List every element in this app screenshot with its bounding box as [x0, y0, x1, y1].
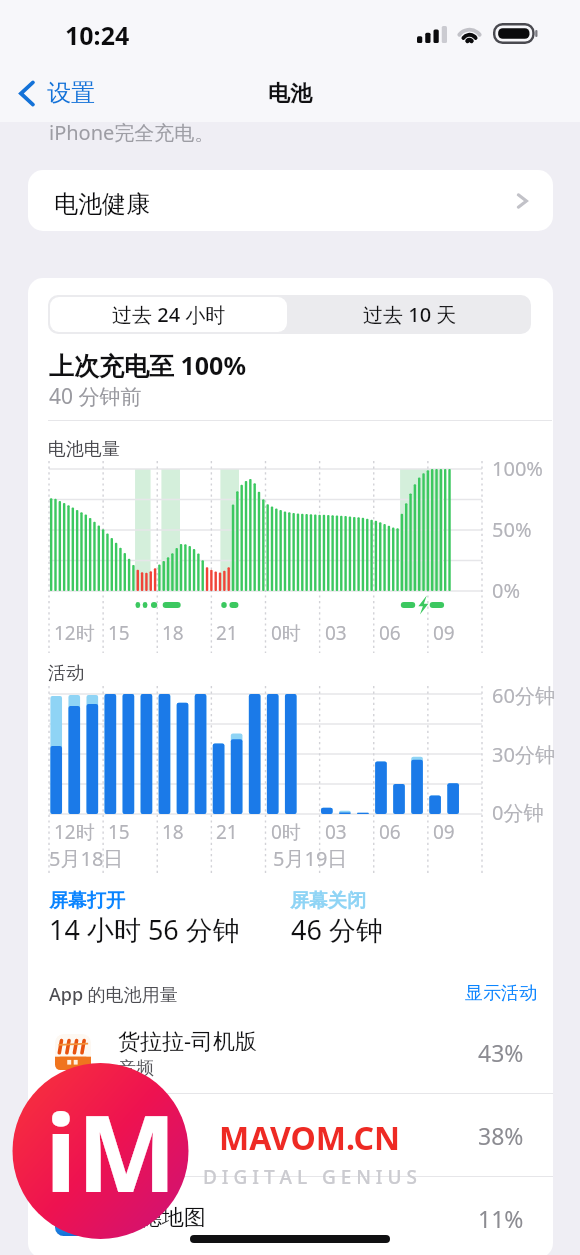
- staticText: 30分钟: [492, 741, 555, 768]
- staticText: 38%: [478, 1120, 524, 1151]
- staticText: 电池健康: [54, 189, 150, 219]
- staticText: 0%: [492, 577, 521, 604]
- staticText: 03: [325, 620, 347, 646]
- staticText: 显示活动: [465, 982, 537, 1005]
- staticText: 10:24: [65, 18, 130, 52]
- staticText: 过去 24 小时: [112, 301, 226, 328]
- staticText: 15: [108, 819, 130, 845]
- button[interactable]: 货拉拉-司机版: [28, 1011, 553, 1093]
- staticText: 15: [108, 620, 130, 646]
- staticText: 03: [325, 819, 347, 845]
- staticText: 14 小时 56 分钟: [49, 911, 240, 948]
- staticText: 18: [162, 819, 184, 845]
- staticText: 06: [379, 620, 401, 646]
- staticText: 上次充电至 100%: [49, 348, 246, 382]
- staticText: 5月19日: [273, 845, 348, 872]
- staticText: 0时: [271, 620, 301, 646]
- staticText: 过去 10 天: [363, 301, 457, 328]
- button[interactable]: 显示活动: [465, 982, 537, 1005]
- button[interactable]: 设置: [10, 74, 103, 112]
- other: 电池健康: [516, 190, 529, 212]
- staticText: D I G I T A L G E N I U S: [203, 1164, 417, 1190]
- staticText: 09: [433, 620, 455, 646]
- staticText: 货拉拉-司机版: [118, 1025, 258, 1055]
- staticText: 40 分钟前: [49, 382, 142, 411]
- staticText: 06: [379, 819, 401, 845]
- button[interactable]: 电池健康: [28, 170, 553, 231]
- staticText: 09: [433, 819, 455, 845]
- staticText: 46 分钟: [291, 911, 383, 948]
- staticText: App 的电池用量: [49, 982, 178, 1007]
- staticText: 设置: [47, 78, 95, 108]
- staticText: 活动: [48, 662, 84, 685]
- staticText: 高德地图: [118, 1204, 206, 1232]
- staticText: MAVOM.CN: [219, 1116, 400, 1160]
- staticText: 0时: [271, 819, 301, 845]
- staticText: 电池: [268, 80, 312, 108]
- staticText: 18: [162, 620, 184, 646]
- button[interactable]: 高德地图: [28, 1177, 553, 1255]
- button[interactable]: 过去 10 天: [289, 295, 531, 334]
- staticText: 50%: [492, 516, 532, 543]
- button[interactable]: 过去 24 小时: [50, 297, 287, 332]
- staticText: 21: [216, 819, 238, 845]
- staticText: 0分钟: [492, 799, 544, 826]
- staticText: 5月18日: [49, 845, 124, 872]
- staticText: iPhone完全充电。: [49, 119, 215, 146]
- staticText: 12时: [54, 819, 95, 845]
- staticText: 电池电量: [48, 438, 120, 461]
- staticText: 60分钟: [492, 682, 555, 709]
- staticText: 21: [216, 620, 238, 646]
- staticText: 11%: [478, 1203, 524, 1234]
- staticText: 屏幕打开: [49, 889, 125, 913]
- button[interactable]: 38%: [28, 1094, 553, 1176]
- staticText: 音频: [118, 1057, 154, 1080]
- staticText: iM: [45, 1079, 177, 1223]
- staticText: 12时: [54, 620, 95, 646]
- staticText: 100%: [492, 455, 543, 482]
- staticText: 43%: [478, 1037, 524, 1068]
- staticText: 屏幕关闭: [290, 889, 366, 913]
